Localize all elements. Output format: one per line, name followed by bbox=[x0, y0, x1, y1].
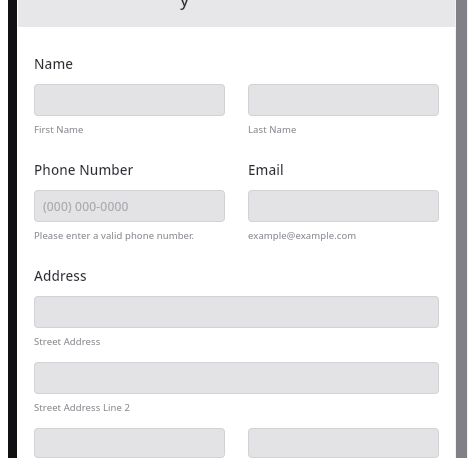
staticText: Please enter a valid phone number. bbox=[34, 229, 195, 242]
staticText: example@example.com bbox=[248, 229, 357, 242]
staticText: Street Address bbox=[34, 335, 101, 348]
button[interactable] bbox=[248, 428, 439, 458]
staticText: Name bbox=[34, 55, 74, 73]
button[interactable] bbox=[34, 428, 225, 458]
button[interactable]: (000) 000-0000 bbox=[34, 190, 225, 222]
button[interactable] bbox=[34, 296, 439, 328]
staticText: y bbox=[180, 0, 189, 11]
staticText: First Name bbox=[34, 123, 84, 136]
staticText: (000) 000-0000 bbox=[43, 198, 129, 214]
staticText: Last Name bbox=[248, 123, 297, 136]
staticText: Phone Number bbox=[34, 161, 134, 179]
staticText: Address bbox=[34, 267, 87, 285]
button[interactable] bbox=[248, 84, 439, 116]
button[interactable] bbox=[34, 84, 225, 116]
staticText: Email bbox=[248, 161, 284, 179]
button[interactable] bbox=[248, 190, 439, 222]
button[interactable] bbox=[34, 362, 439, 394]
staticText: Street Address Line 2 bbox=[34, 401, 131, 414]
